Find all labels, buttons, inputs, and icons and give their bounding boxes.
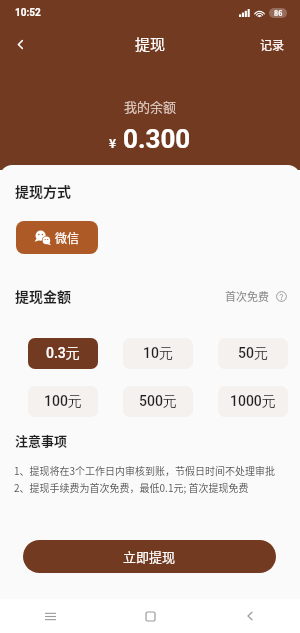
staticText: 0.3元	[46, 345, 80, 363]
staticText: 1、提现将在3个工作日内审核到账，节假日时间不处理审批	[14, 463, 276, 477]
staticText: 2、提现手续费为首次免费，最低0.1元; 首次提现免费	[14, 480, 249, 494]
staticText: 提现方式	[15, 181, 71, 201]
staticText: 提现金额	[15, 286, 71, 306]
button[interactable]: 500元	[123, 386, 193, 417]
staticText: 1000元	[230, 393, 276, 411]
button[interactable]: 1000元	[218, 386, 288, 417]
staticText: 提现	[135, 33, 166, 55]
button[interactable]: 50元	[218, 338, 288, 369]
staticText: ¥	[109, 134, 117, 151]
button[interactable]: 10元	[123, 338, 193, 369]
staticText: 86	[274, 8, 283, 18]
staticText: 立即提现	[123, 547, 176, 566]
button[interactable]: Home	[100, 599, 200, 633]
staticText: 注意事项	[15, 431, 68, 450]
staticText: 100元	[44, 393, 82, 411]
button[interactable]: 微信	[16, 221, 98, 254]
button[interactable]: Back	[0, 30, 40, 58]
button[interactable]: 100元	[28, 386, 98, 417]
button[interactable]: 记录	[244, 30, 300, 58]
button[interactable]: Recent apps	[0, 599, 100, 633]
staticText: 微信	[55, 229, 80, 246]
staticText: 10元	[143, 345, 173, 363]
staticText: 记录	[260, 36, 285, 53]
button[interactable]: 0.3元	[28, 338, 98, 369]
staticText: 我的余额	[124, 97, 177, 116]
staticText: 50元	[238, 345, 268, 363]
button[interactable]: Fee info	[225, 288, 287, 304]
button[interactable]: Back	[200, 599, 300, 633]
staticText: 10:52	[15, 7, 41, 19]
button[interactable]: 立即提现	[23, 540, 276, 573]
staticText: 首次免费	[225, 288, 269, 304]
staticText: 0.300	[123, 124, 191, 154]
staticText: 500元	[139, 393, 177, 411]
